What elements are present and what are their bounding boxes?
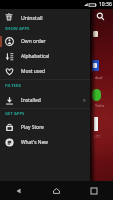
staticText: Play Store: [21, 124, 44, 131]
staticText: Own order: [21, 38, 46, 45]
staticText: 10:36: [99, 1, 112, 8]
button[interactable]: Back: [0, 181, 37, 200]
button[interactable]: Most used: [0, 64, 90, 79]
button[interactable]: Home: [37, 181, 75, 200]
staticText: SHOW APPS: [5, 26, 30, 32]
staticText: 9: [83, 98, 86, 104]
staticText: Tetris: [95, 103, 105, 108]
staticText: Uninstall: [21, 14, 43, 21]
button[interactable]: Installed: [0, 93, 90, 108]
button[interactable]: Recent apps: [75, 181, 113, 200]
staticText: What's New: [21, 139, 48, 146]
button[interactable]: Play Store: [0, 120, 90, 135]
staticText: dual: [95, 75, 103, 80]
button[interactable]: Own order: [0, 34, 90, 49]
staticText: GET APPS: [5, 111, 25, 117]
staticText: UTC: [94, 134, 101, 139]
button[interactable]: What's New: [0, 135, 90, 150]
staticText: FILTERS: [5, 83, 22, 89]
button[interactable]: Alphabetical: [0, 49, 90, 64]
other: Search: [96, 12, 105, 21]
staticText: Most used: [21, 68, 45, 75]
staticText: Installed: [21, 97, 41, 104]
staticText: Alphabetical: [21, 53, 50, 60]
button[interactable]: Uninstall: [0, 9, 90, 25]
